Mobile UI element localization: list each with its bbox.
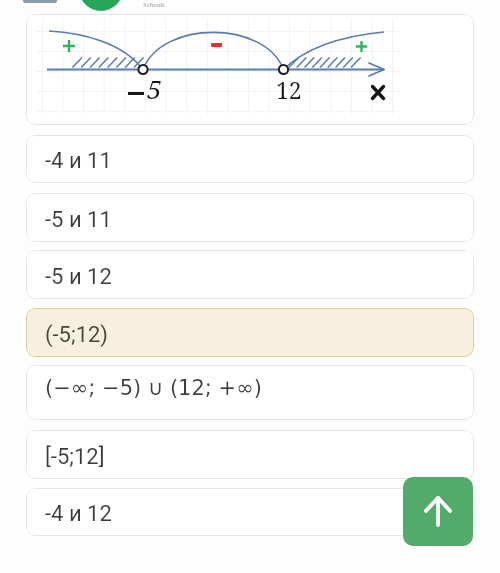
button[interactable]: (−∞; −5) ∪ (12; +∞)	[26, 365, 474, 420]
staticText: (−∞; −5) ∪ (12; +∞)	[45, 376, 262, 400]
staticText: 12	[276, 74, 302, 105]
staticText: -5 и 12	[45, 264, 112, 290]
staticText: -4 и 11	[45, 148, 112, 174]
staticText: 5	[147, 71, 162, 106]
staticText: [-5;12]	[45, 444, 105, 470]
button[interactable]: Scroll to top	[403, 477, 473, 546]
staticText: -5 и 11	[45, 207, 112, 233]
button[interactable]: -4 и 11	[26, 135, 474, 183]
button[interactable]: -5 и 11	[26, 193, 474, 242]
staticText: (-5;12)	[45, 322, 109, 348]
staticText: -4 и 12	[45, 501, 112, 527]
staticText: International Schools	[126, 0, 182, 9]
button[interactable]: (-5;12)	[26, 308, 474, 357]
button[interactable]: -5 и 12	[26, 250, 474, 299]
button[interactable]: [-5;12]	[26, 430, 474, 479]
button[interactable]: -4 и 12	[26, 488, 474, 536]
